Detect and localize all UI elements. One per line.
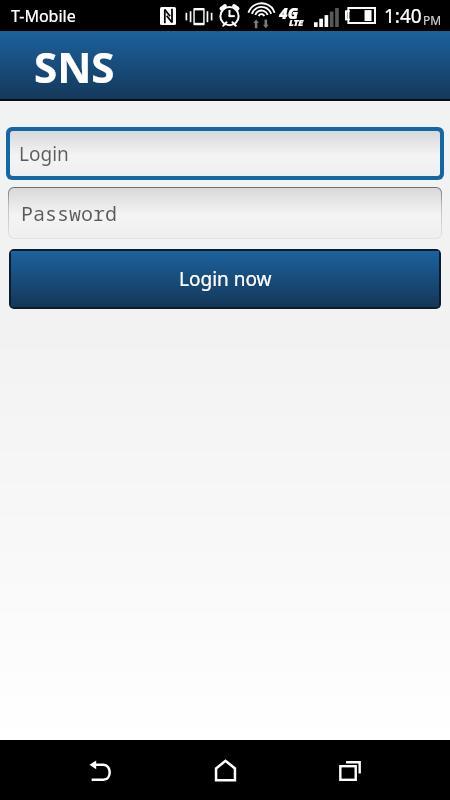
staticText: 1:40 [384,3,422,29]
button[interactable]: Home [201,746,250,795]
button[interactable]: Login [10,131,440,176]
staticText: LTE [289,16,304,28]
staticText: T-Mobile [11,5,76,27]
button[interactable]: Recent apps [325,746,374,795]
staticText: Login [19,141,69,167]
staticText: SNS [34,38,115,95]
button[interactable]: Login now [11,251,439,307]
button[interactable]: Password [9,188,441,238]
staticText: 4G [279,3,299,23]
button[interactable]: Back [76,746,125,795]
staticText: Password [21,200,117,227]
staticText: Login now [179,266,272,292]
staticText: PM [423,12,442,28]
